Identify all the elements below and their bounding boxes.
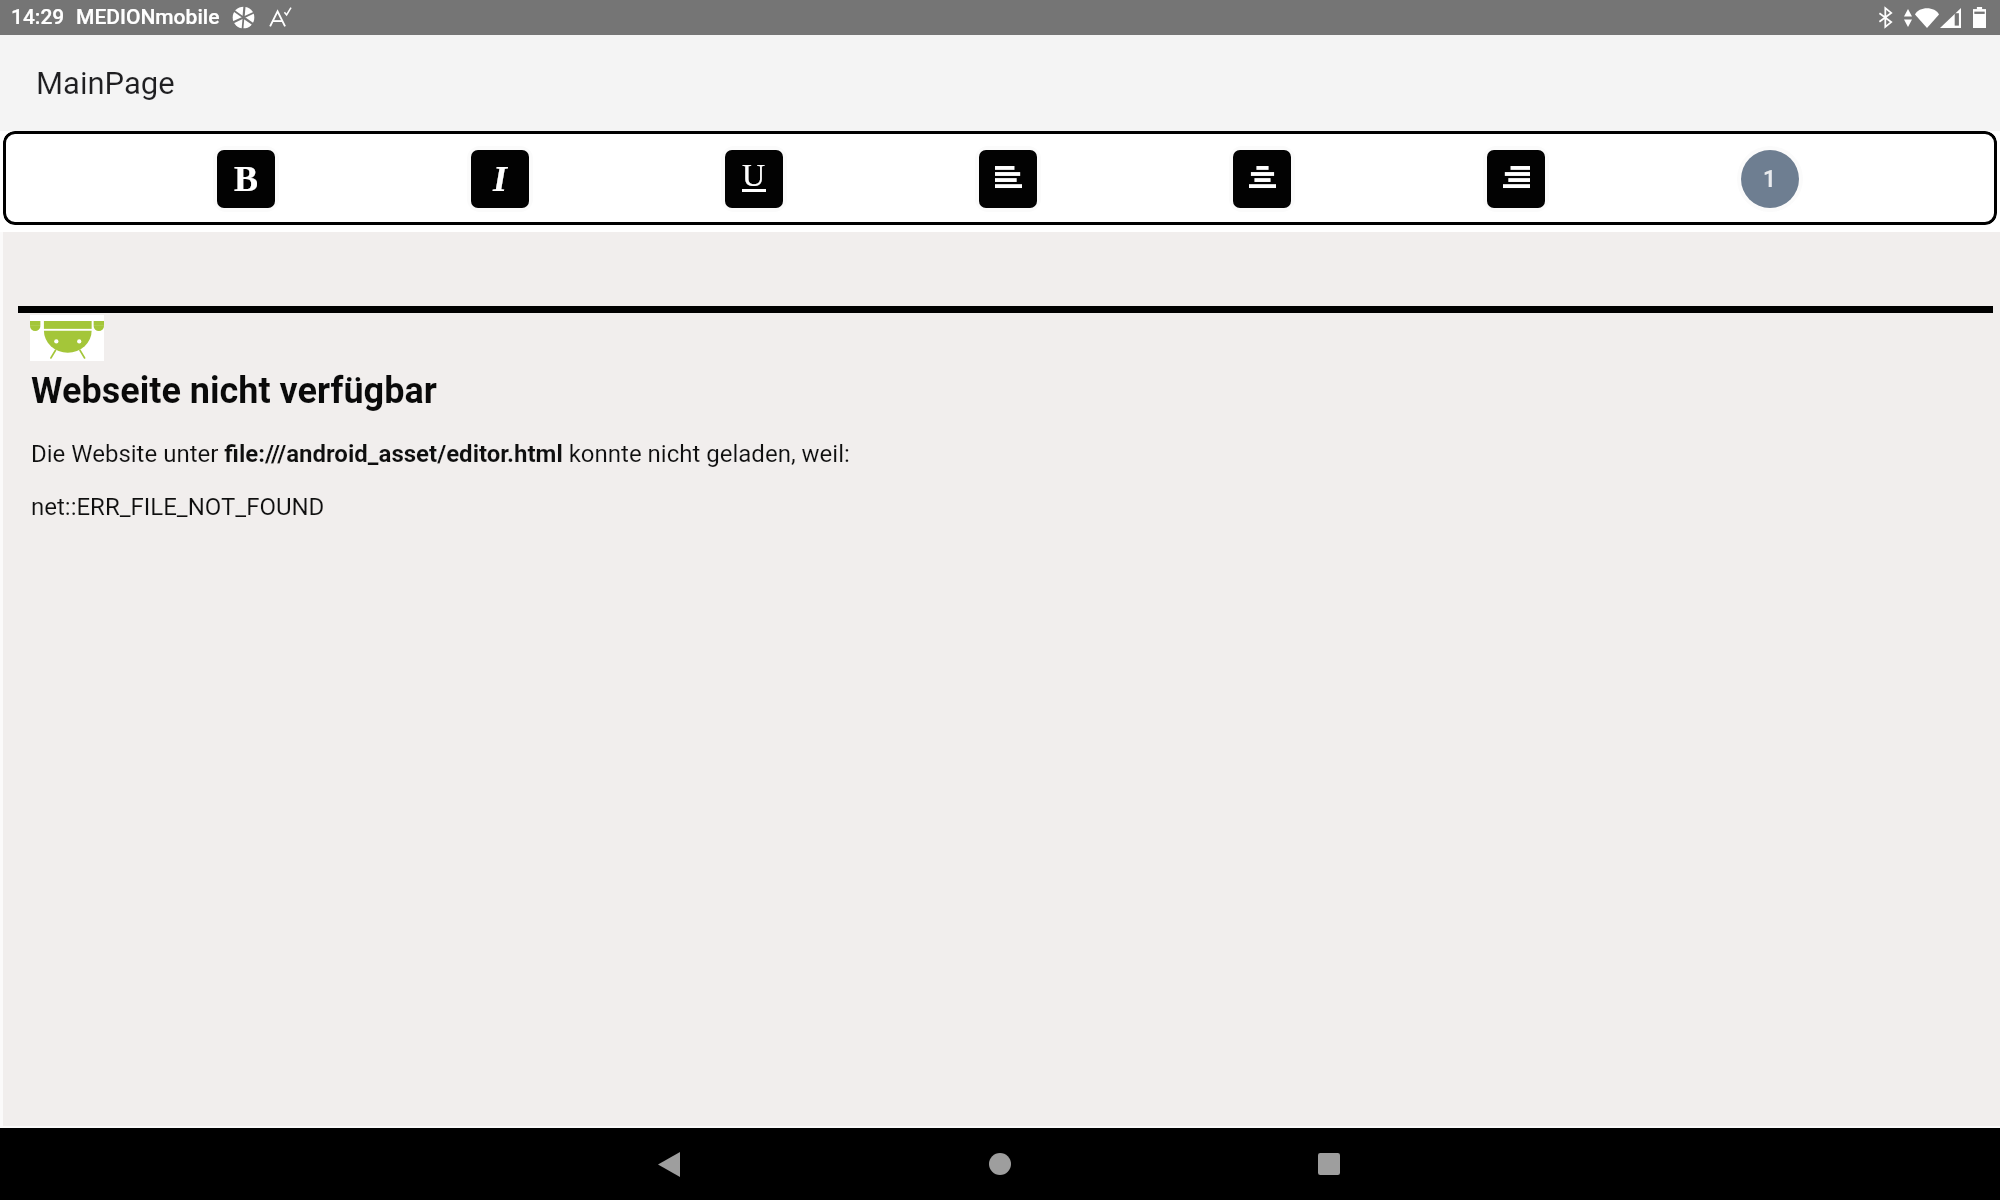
button[interactable]: Page 1 <box>1737 146 1803 212</box>
button[interactable]: Align left <box>975 146 1041 212</box>
staticText: B <box>234 159 259 199</box>
button[interactable]: Home <box>964 1128 1036 1200</box>
staticText: I <box>493 159 508 199</box>
staticText: Die Website unter file:///android_asset/… <box>31 440 850 468</box>
button[interactable]: Align right <box>1483 146 1549 212</box>
staticText: Webseite nicht verfügbar <box>31 370 437 412</box>
button[interactable]: Underline <box>721 146 787 212</box>
staticText: 14:29 <box>11 5 65 30</box>
button[interactable]: Align center <box>1229 146 1295 212</box>
staticText: MEDIONmobile <box>76 5 220 30</box>
button[interactable]: Recent apps <box>1293 1128 1365 1200</box>
button[interactable]: Back <box>633 1128 705 1200</box>
staticText: net::ERR_FILE_NOT_FOUND <box>31 493 325 521</box>
staticText: U <box>742 157 766 192</box>
staticText: MainPage <box>36 65 175 101</box>
button[interactable]: Bold <box>213 146 279 212</box>
button[interactable]: Italic <box>467 146 533 212</box>
staticText: 1 <box>1763 166 1777 193</box>
